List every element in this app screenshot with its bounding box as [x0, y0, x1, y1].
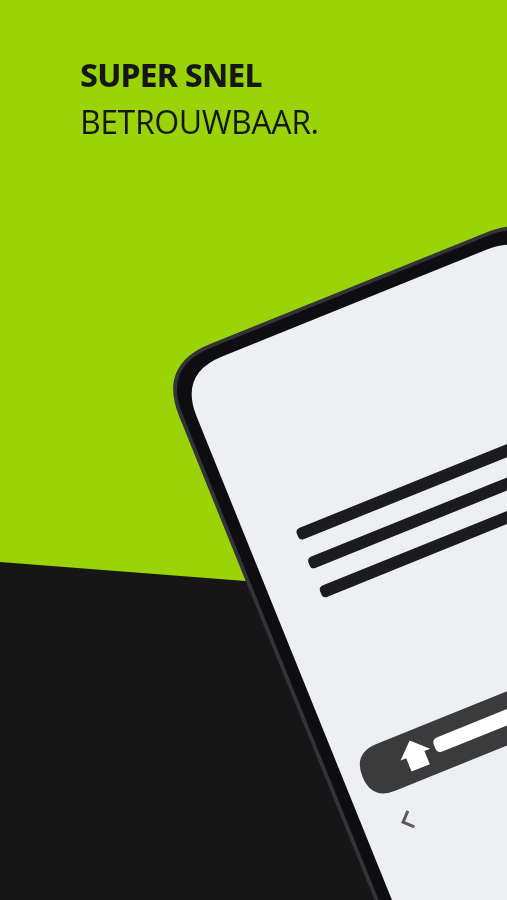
staticText: SUPER SNEL: [80, 53, 262, 97]
staticText: BETROUWBAAR.: [80, 100, 319, 144]
other: App screenshot preview: [0, 0, 507, 900]
button[interactable]: SUPER SNEL: [80, 53, 319, 141]
